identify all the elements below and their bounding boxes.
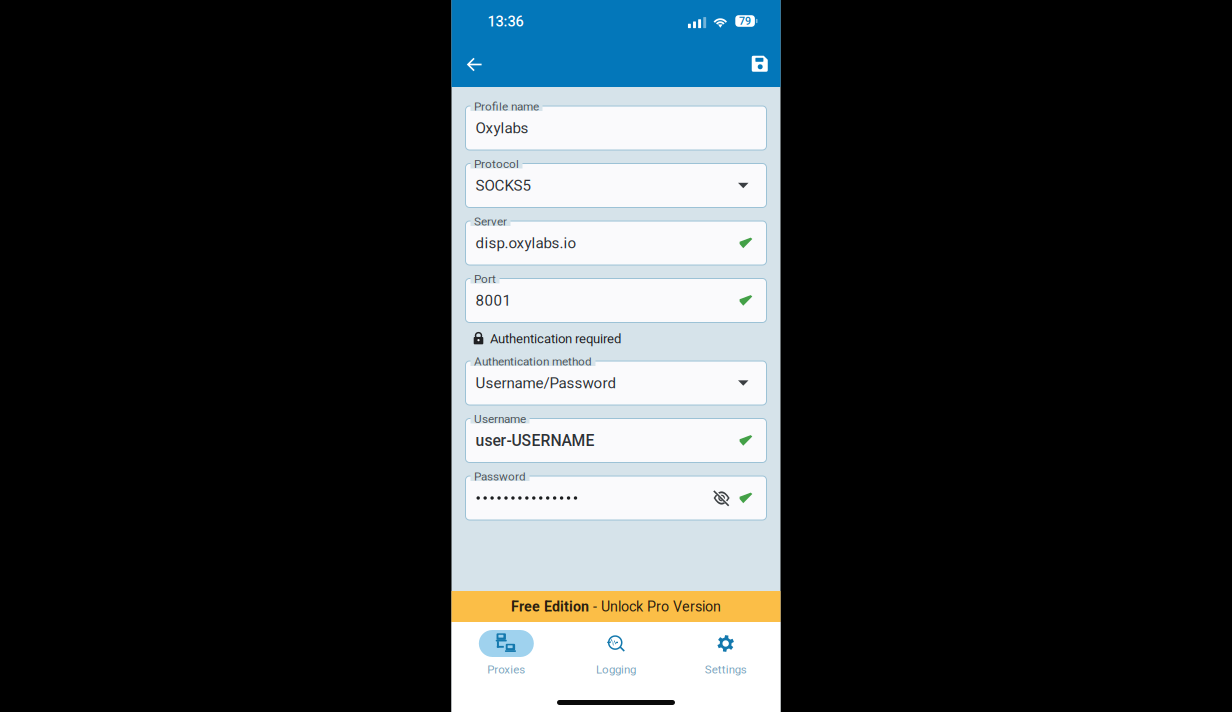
staticText: Password <box>474 470 526 483</box>
button[interactable]: Show password <box>714 491 730 505</box>
button[interactable]: Proxies <box>451 630 561 678</box>
staticText: Settings <box>705 663 747 676</box>
button[interactable]: Save <box>734 42 780 87</box>
button[interactable]: Back <box>451 42 497 87</box>
staticText: Authentication required <box>490 331 621 346</box>
button[interactable]: Free Edition <box>451 591 780 622</box>
staticText: user-USERNAME <box>475 431 594 450</box>
staticText: 8001 <box>475 292 511 309</box>
staticText: Free Edition <box>511 598 589 615</box>
button[interactable]: Username/Password <box>465 361 766 405</box>
staticText: Username/Password <box>475 374 616 392</box>
staticText: - Unlock Pro Version <box>589 598 721 615</box>
staticText: Logging <box>596 663 636 676</box>
staticText: Protocol <box>474 157 519 171</box>
staticText: Profile name <box>474 100 539 113</box>
staticText: Server <box>474 215 507 228</box>
staticText: Username <box>474 412 526 426</box>
staticText: Proxies <box>487 663 525 676</box>
button[interactable]: SOCKS5 <box>465 163 766 207</box>
staticText: Port <box>474 272 496 286</box>
button[interactable]: Logging <box>561 630 671 678</box>
staticText: Oxylabs <box>475 119 528 137</box>
staticText: 79 <box>739 15 751 27</box>
staticText: Authentication method <box>474 355 592 368</box>
staticText: 13:36 <box>487 13 523 30</box>
button[interactable]: Settings <box>671 630 780 678</box>
staticText: disp.oxylabs.io <box>475 234 576 252</box>
staticText: SOCKS5 <box>475 177 531 194</box>
